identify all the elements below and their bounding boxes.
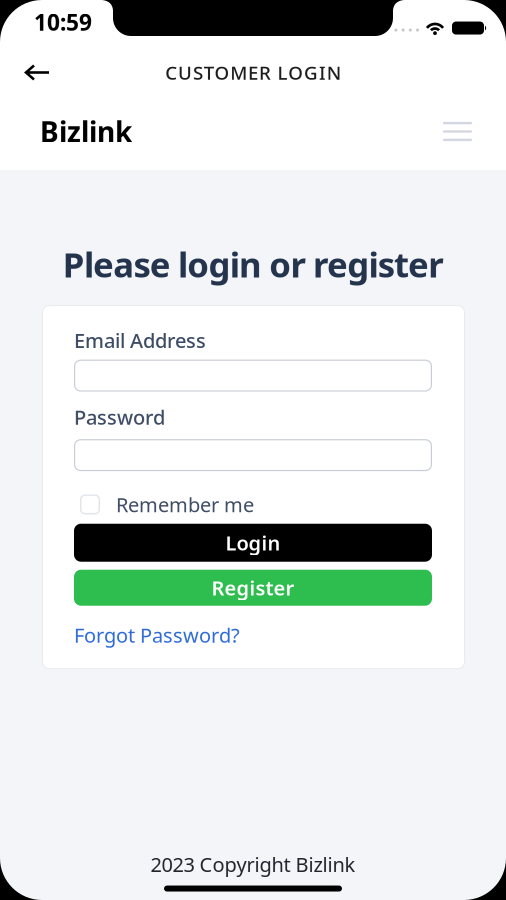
staticText: Login [225,529,280,556]
staticText: Email Address [74,327,206,354]
button[interactable]: Menu [443,112,506,151]
button[interactable]: Forgot Password? [74,622,240,648]
staticText: 2023 Copyright Bizlink [150,851,355,878]
button[interactable]: Back [0,53,50,92]
staticText: Please login or register [63,241,443,287]
staticText: Bizlink [40,113,132,150]
staticText: Register [211,574,294,601]
button[interactable]: Login [74,524,432,562]
staticText: CUSTOMER LOGIN [165,60,341,85]
staticText: Password [74,404,165,430]
staticText: 10:59 [34,7,92,37]
staticText: Remember me [116,491,254,518]
staticText: Forgot Password? [74,622,240,648]
button[interactable]: Remember me [74,491,254,518]
button[interactable]: Register [74,570,432,606]
